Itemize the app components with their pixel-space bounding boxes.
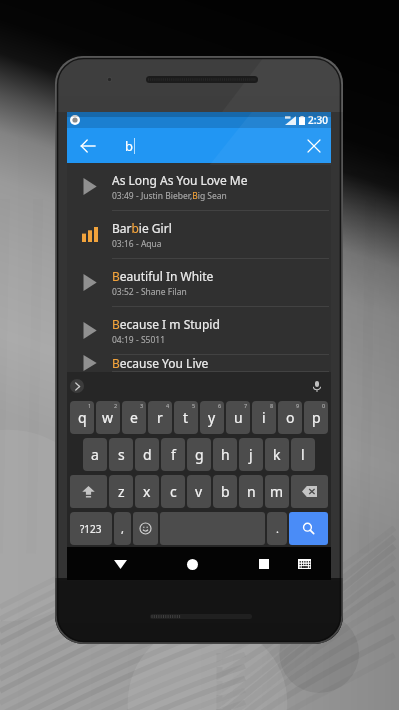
staticText: o (286, 408, 295, 427)
staticText: b (125, 137, 133, 155)
staticText: . (276, 521, 279, 536)
button[interactable]: k (265, 438, 289, 471)
button[interactable]: q (70, 401, 94, 434)
staticText: l (301, 445, 305, 464)
staticText: g (195, 445, 204, 464)
staticText: Beautiful In White (112, 268, 214, 284)
button[interactable]: ?123 (70, 512, 112, 545)
button[interactable]: y (200, 401, 224, 434)
staticText: 03:49 - Justin Bieber,Big Sean (112, 190, 227, 202)
button[interactable]: Home (176, 548, 208, 580)
staticText: e (130, 408, 138, 427)
staticText: 7 (244, 402, 248, 409)
staticText: 6 (218, 402, 222, 409)
staticText: As Long As You Love Me (112, 172, 248, 188)
button[interactable]: d (135, 438, 159, 471)
staticText: s (118, 445, 125, 464)
button[interactable]: More suggestions (70, 379, 84, 393)
button[interactable]: g (187, 438, 211, 471)
button[interactable]: Because I m Stupid (67, 307, 331, 355)
button[interactable]: t (174, 401, 198, 434)
button[interactable]: x (135, 475, 159, 508)
staticText: c (170, 482, 177, 501)
staticText: a (91, 445, 99, 464)
staticText: 03:52 - Shane Filan (112, 286, 187, 298)
staticText: Because I m Stupid (112, 316, 220, 332)
button[interactable]: u (226, 401, 250, 434)
staticText: b (221, 482, 230, 501)
staticText: 04:19 - S5011 (112, 334, 165, 346)
button[interactable]: , (114, 512, 131, 545)
button[interactable]: Barbie Girl (67, 211, 331, 259)
button[interactable]: o (278, 401, 302, 434)
button[interactable]: v (187, 475, 211, 508)
button[interactable]: j (239, 438, 263, 471)
button[interactable]: Shift (70, 475, 107, 508)
button[interactable]: m (265, 475, 289, 508)
button[interactable]: l (291, 438, 315, 471)
staticText: n (247, 482, 256, 501)
staticText: d (143, 445, 152, 464)
button[interactable]: Back (104, 548, 136, 580)
button[interactable]: p (304, 401, 328, 434)
staticText: ?123 (80, 522, 102, 536)
staticText: 2 (114, 402, 118, 409)
staticText: z (118, 482, 125, 501)
staticText: Because You Live (112, 355, 209, 371)
staticText: h (221, 445, 230, 464)
button[interactable]: Recent apps (248, 548, 280, 580)
staticText: m (270, 482, 284, 501)
staticText: 9 (296, 402, 300, 409)
button[interactable]: As Long As You Love Me (67, 163, 331, 211)
staticText: 4 (166, 402, 170, 409)
staticText: , (121, 521, 124, 536)
staticText: 03:16 - Aqua (112, 238, 162, 250)
button[interactable]: w (96, 401, 120, 434)
staticText: y (208, 408, 216, 427)
button[interactable]: a (83, 438, 107, 471)
button[interactable]: Emoji (133, 512, 158, 545)
staticText: i (262, 408, 266, 427)
button[interactable]: Search (289, 512, 328, 545)
button[interactable]: Switch keyboard (288, 548, 320, 580)
staticText: 8 (270, 402, 274, 409)
staticText: k (273, 445, 281, 464)
button[interactable]: Beautiful In White (67, 259, 331, 307)
button[interactable]: i (252, 401, 276, 434)
button[interactable]: Back (67, 128, 108, 163)
staticText: 0 (322, 402, 326, 409)
button[interactable]: r (148, 401, 172, 434)
staticText: 1 (88, 402, 92, 409)
button[interactable]: n (239, 475, 263, 508)
staticText: f (171, 445, 176, 464)
button[interactable]: s (109, 438, 133, 471)
button[interactable]: Backspace (291, 475, 328, 508)
button[interactable]: Clear search (296, 128, 331, 163)
staticText: j (249, 445, 253, 464)
button[interactable]: b (213, 475, 237, 508)
staticText: Barbie Girl (112, 220, 172, 236)
button[interactable]: . (267, 512, 287, 545)
button[interactable]: f (161, 438, 185, 471)
staticText: p (312, 408, 321, 427)
staticText: r (157, 408, 163, 427)
button[interactable]: e (122, 401, 146, 434)
button[interactable]: Because You Live (67, 355, 331, 372)
staticText: 5 (192, 402, 196, 409)
staticText: t (183, 408, 189, 427)
staticText: u (234, 408, 243, 427)
staticText: 3 (140, 402, 144, 409)
button[interactable]: z (109, 475, 133, 508)
button[interactable]: c (161, 475, 185, 508)
button[interactable]: Voice input (310, 379, 324, 393)
staticText: x (143, 482, 151, 501)
staticText: 2:30 (308, 113, 328, 127)
button[interactable]: h (213, 438, 237, 471)
staticText: q (78, 408, 87, 427)
staticText: w (102, 408, 114, 427)
staticText: v (195, 482, 203, 501)
